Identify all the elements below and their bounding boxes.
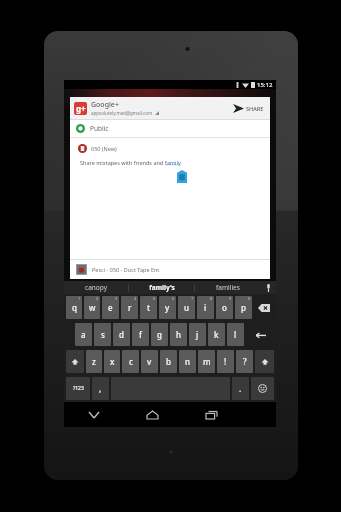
staticText: k bbox=[214, 329, 219, 340]
staticText: r bbox=[128, 302, 132, 313]
button[interactable]: f bbox=[132, 323, 149, 346]
staticText: v bbox=[147, 356, 152, 367]
button[interactable]: Emoji bbox=[251, 377, 274, 400]
staticText: j bbox=[196, 329, 199, 340]
button[interactable]: Pesci - 050 - Duct Tape Ent bbox=[70, 260, 270, 279]
staticText: 2 bbox=[96, 296, 99, 301]
staticText: family bbox=[165, 159, 181, 166]
button[interactable]: Enter bbox=[246, 323, 274, 346]
staticText: 4 bbox=[134, 296, 137, 301]
staticText: a bbox=[81, 329, 86, 340]
button[interactable]: q bbox=[66, 296, 82, 319]
staticText: Pesci - 050 - Duct Tape Ent bbox=[92, 266, 160, 273]
button[interactable]: ? bbox=[236, 350, 253, 373]
staticText: appsolutely.mad@gmail.com bbox=[91, 110, 153, 116]
button[interactable]: l bbox=[227, 323, 244, 346]
staticText: ? bbox=[243, 356, 247, 367]
button[interactable]: t bbox=[140, 296, 157, 319]
button[interactable]: m bbox=[198, 350, 215, 373]
button[interactable]: ! bbox=[217, 350, 234, 373]
button[interactable]: s bbox=[94, 323, 111, 346]
button[interactable]: canopy bbox=[64, 281, 128, 294]
button[interactable]: ?123 bbox=[66, 377, 90, 400]
button[interactable]: e bbox=[102, 296, 119, 319]
staticText: 5 bbox=[153, 296, 156, 301]
button[interactable]: Home bbox=[123, 402, 182, 427]
button[interactable]: Recent apps bbox=[182, 402, 241, 427]
button[interactable]: c bbox=[122, 350, 139, 373]
staticText: p bbox=[241, 302, 246, 313]
staticText: 0 bbox=[248, 296, 251, 301]
staticText: g+ bbox=[76, 103, 86, 114]
staticText: m bbox=[203, 356, 211, 367]
staticText: t bbox=[147, 302, 151, 313]
button[interactable]: v bbox=[141, 350, 158, 373]
staticText: 8 bbox=[210, 296, 213, 301]
staticText: canopy bbox=[85, 283, 107, 292]
staticText: h bbox=[176, 329, 182, 340]
staticText: e bbox=[108, 302, 113, 313]
button[interactable]: b bbox=[160, 350, 177, 373]
staticText: family's bbox=[149, 283, 175, 292]
button[interactable]: h bbox=[170, 323, 187, 346]
staticText: y bbox=[165, 302, 170, 313]
staticText: Google+ bbox=[91, 100, 119, 110]
button[interactable]: , bbox=[92, 377, 109, 400]
button[interactable]: Hide keyboard bbox=[64, 402, 123, 427]
button[interactable]: w bbox=[84, 296, 100, 319]
button[interactable]: Public bbox=[70, 120, 270, 137]
staticText: , bbox=[99, 383, 102, 394]
button[interactable]: k bbox=[208, 323, 225, 346]
button[interactable]: o bbox=[216, 296, 233, 319]
staticText: o bbox=[222, 302, 227, 313]
button[interactable]: y bbox=[159, 296, 176, 319]
button[interactable]: r bbox=[121, 296, 138, 319]
staticText: i bbox=[204, 302, 207, 313]
button[interactable]: x bbox=[104, 350, 120, 373]
staticText: n bbox=[185, 356, 191, 367]
staticText: x bbox=[110, 356, 115, 367]
button[interactable]: n bbox=[179, 350, 196, 373]
staticText: s bbox=[101, 329, 105, 340]
button[interactable]: z bbox=[86, 350, 102, 373]
staticText: . bbox=[239, 383, 242, 394]
button[interactable]: u bbox=[178, 296, 195, 319]
button[interactable]: p bbox=[235, 296, 252, 319]
button[interactable]: families bbox=[195, 281, 260, 294]
staticText: q bbox=[72, 302, 77, 313]
staticText: 7 bbox=[191, 296, 194, 301]
staticText: c bbox=[129, 356, 133, 367]
button[interactable]: g+ bbox=[70, 97, 270, 119]
staticText: families bbox=[216, 283, 240, 292]
staticText: SHARE bbox=[246, 105, 264, 112]
staticText: g bbox=[157, 329, 162, 340]
staticText: d bbox=[119, 329, 124, 340]
button[interactable]: Delete bbox=[254, 296, 274, 319]
staticText: 9 bbox=[229, 296, 232, 301]
staticText: 15:12 bbox=[257, 81, 273, 89]
button[interactable]: a bbox=[75, 323, 92, 346]
staticText: 1 bbox=[78, 296, 81, 301]
staticText: 3 bbox=[115, 296, 118, 301]
staticText: f bbox=[139, 329, 142, 340]
staticText: u bbox=[184, 302, 190, 313]
button[interactable]: Shift bbox=[255, 350, 274, 373]
button[interactable]: SHARE bbox=[231, 101, 266, 116]
staticText: w bbox=[89, 302, 96, 313]
staticText: 050 (New) bbox=[91, 145, 117, 152]
button[interactable]: j bbox=[189, 323, 206, 346]
staticText: Share mixtapes with friends and bbox=[80, 159, 165, 166]
button[interactable]: Voice input bbox=[260, 281, 276, 294]
button[interactable]: . bbox=[232, 377, 249, 400]
staticText: ! bbox=[224, 356, 227, 367]
staticText: l bbox=[234, 329, 237, 340]
staticText: ?123 bbox=[73, 385, 84, 392]
button[interactable]: d bbox=[113, 323, 130, 346]
staticText: 6 bbox=[172, 296, 175, 301]
staticText: b bbox=[166, 356, 171, 367]
button[interactable]: i bbox=[197, 296, 214, 319]
button[interactable]: family's bbox=[129, 281, 194, 294]
button[interactable]: g bbox=[151, 323, 168, 346]
button[interactable]: Shift bbox=[66, 350, 84, 373]
